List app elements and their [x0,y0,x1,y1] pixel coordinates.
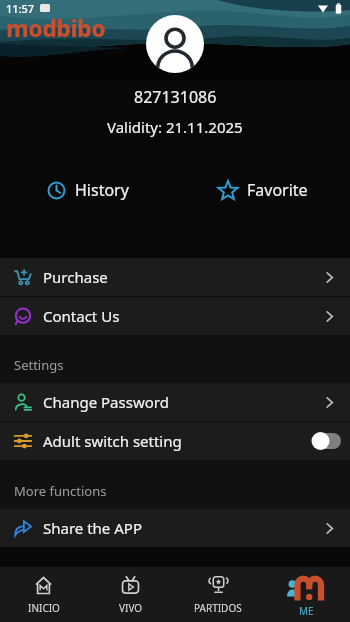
staticText: PARTIDOS [194,601,242,615]
staticText: Share the APP [43,518,142,538]
staticText: More functions [14,482,107,500]
button[interactable]: History [0,173,175,207]
staticText: Favorite [247,179,308,201]
button[interactable]: Purchase [0,258,350,296]
staticText: Purchase [43,267,108,287]
button[interactable]: Favorite [175,173,350,207]
staticText: Settings [14,356,64,374]
button[interactable]: INICIO [0,567,87,622]
button[interactable]: PARTIDOS [174,567,262,622]
staticText: Validity: 21.11.2025 [107,117,243,137]
staticText: VIVO [119,601,143,615]
staticText: Adult switch setting [43,431,182,451]
staticText: Change Password [43,392,169,412]
button[interactable]: Change Password [0,383,350,421]
staticText: ME [299,604,314,618]
button[interactable]: ME [262,567,350,622]
staticText: modbibo [6,12,106,43]
staticText: Contact Us [43,306,120,326]
button[interactable]: VIVO [87,567,174,622]
button[interactable]: Contact Us [0,297,350,335]
button[interactable]: Adult switch setting [0,422,350,460]
staticText: INICIO [28,601,60,615]
staticText: History [75,179,129,201]
staticText: 11:57 [6,1,35,16]
staticText: 827131086 [134,86,217,108]
button[interactable]: Share the APP [0,509,350,547]
